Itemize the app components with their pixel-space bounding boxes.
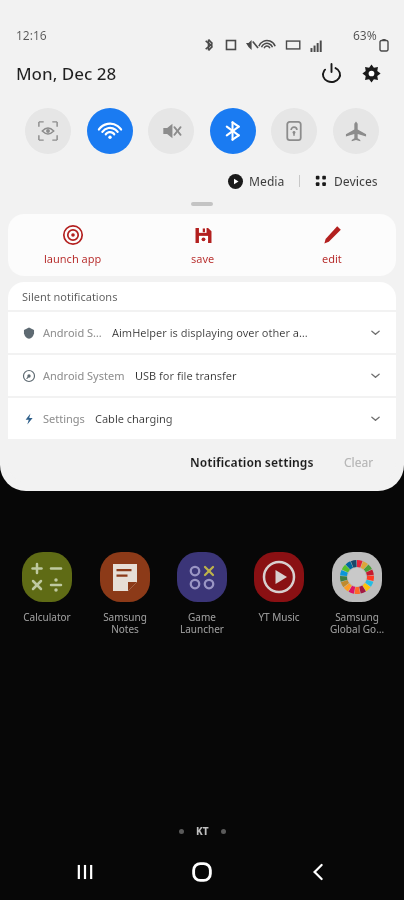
staticText: Notification settings: [190, 454, 314, 470]
button[interactable]: edit: [267, 214, 396, 276]
button[interactable]: Game Launcher: [166, 548, 238, 636]
button[interactable]: Samsung Global Go…: [321, 548, 393, 636]
button[interactable]: launch app: [8, 214, 138, 276]
button[interactable]: Settings: [354, 56, 388, 90]
button[interactable]: YT Music: [243, 548, 315, 624]
button[interactable]: Media: [224, 171, 289, 191]
button[interactable]: Airplane mode: [333, 108, 379, 154]
staticText: Samsung Global Go…: [321, 610, 393, 636]
staticText: edit: [322, 251, 342, 266]
staticText: Devices: [334, 173, 378, 189]
button[interactable]: Samsung Notes: [89, 548, 161, 636]
staticText: Game Launcher: [166, 610, 238, 636]
staticText: Mon, Dec 28: [16, 62, 117, 85]
button[interactable]: Bluetooth: [210, 108, 256, 154]
button[interactable]: Android S…: [8, 312, 396, 353]
staticText: KT: [196, 824, 209, 838]
button[interactable]: Recents: [53, 844, 117, 900]
button[interactable]: Lock: [271, 108, 317, 154]
button[interactable]: Power off: [314, 56, 348, 90]
staticText: save: [191, 251, 215, 266]
staticText: Media: [249, 173, 285, 189]
staticText: Clear: [344, 454, 374, 470]
button[interactable]: Back: [287, 844, 351, 900]
staticText: Settings: [43, 411, 85, 426]
button[interactable]: Scan: [25, 108, 71, 154]
staticText: Calculator: [11, 610, 83, 624]
staticText: AimHelper is displaying over other a…: [112, 325, 363, 340]
staticText: Android System: [43, 368, 125, 383]
button[interactable]: Android System: [8, 355, 396, 396]
button[interactable]: save: [138, 214, 267, 276]
staticText: launch app: [44, 251, 102, 266]
button[interactable]: Settings: [8, 398, 396, 439]
staticText: Android S…: [43, 325, 102, 340]
button[interactable]: Calculator: [11, 548, 83, 624]
button[interactable]: Devices: [310, 171, 382, 191]
staticText: 12:16: [16, 27, 47, 43]
staticText: Cable charging: [95, 411, 363, 426]
button[interactable]: Home: [170, 844, 234, 900]
button[interactable]: Mute: [148, 108, 194, 154]
staticText: YT Music: [243, 610, 315, 624]
button[interactable]: Clear: [338, 448, 380, 476]
staticText: USB for file transfer: [135, 368, 363, 383]
staticText: Silent notifications: [22, 289, 118, 304]
staticText: 63%: [353, 27, 377, 43]
staticText: Samsung Notes: [89, 610, 161, 636]
button[interactable]: Wi-Fi: [87, 108, 133, 154]
button[interactable]: Notification settings: [184, 448, 320, 476]
